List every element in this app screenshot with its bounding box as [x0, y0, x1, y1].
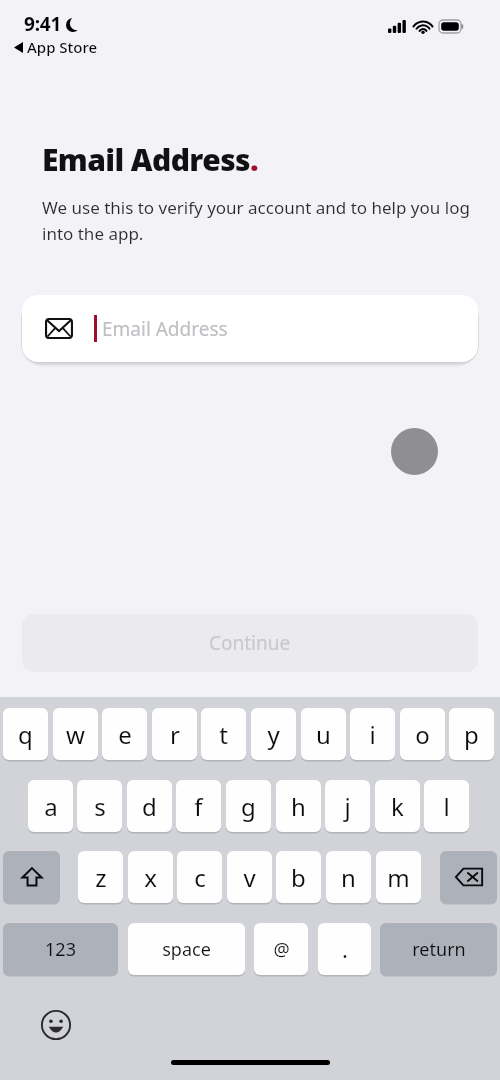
button[interactable]: n [326, 851, 371, 903]
button[interactable]: m [376, 851, 421, 903]
button[interactable]: return [380, 923, 497, 975]
staticText: . [342, 934, 348, 964]
button[interactable]: g [226, 780, 271, 832]
staticText: e [118, 718, 132, 751]
staticText: j [344, 790, 351, 823]
staticText: 9:41 [24, 11, 62, 37]
button[interactable]: w [53, 708, 98, 760]
staticText: r [170, 718, 180, 751]
button[interactable]: @ [254, 923, 308, 975]
staticText: k [391, 790, 404, 823]
staticText: s [94, 790, 106, 823]
staticText: t [219, 718, 228, 751]
button[interactable]: Shift [3, 851, 60, 903]
button[interactable]: space [128, 923, 245, 975]
staticText: n [341, 861, 356, 894]
button[interactable]: d [127, 780, 172, 832]
button[interactable]: a [28, 780, 73, 832]
button[interactable]: Emoji keyboard [36, 1005, 76, 1045]
staticText: y [267, 718, 280, 751]
staticText: i [369, 718, 376, 751]
staticText: Email Address [102, 316, 228, 342]
staticText: v [243, 861, 256, 894]
button[interactable]: c [177, 851, 222, 903]
staticText: Continue [209, 630, 291, 656]
staticText: 123 [45, 937, 76, 962]
button[interactable]: z [78, 851, 123, 903]
staticText: q [18, 718, 33, 751]
staticText: return [412, 937, 466, 962]
button[interactable]: b [276, 851, 321, 903]
button[interactable]: t [201, 708, 246, 760]
button[interactable]: e [102, 708, 147, 760]
button[interactable]: Continue [22, 614, 478, 672]
button[interactable]: 123 [3, 923, 118, 975]
button[interactable]: h [276, 780, 321, 832]
button[interactable]: Profile [391, 428, 438, 475]
button[interactable]: o [400, 708, 445, 760]
button[interactable]: r [152, 708, 197, 760]
staticText: g [241, 790, 256, 823]
staticText: space [162, 937, 211, 962]
button[interactable]: u [301, 708, 346, 760]
staticText: m [387, 861, 410, 894]
staticText: We use this to verify your account and t… [42, 196, 472, 245]
staticText: o [415, 718, 430, 751]
button[interactable]: f [176, 780, 221, 832]
button[interactable]: App Store [12, 36, 100, 58]
button[interactable]: j [325, 780, 370, 832]
staticText: a [44, 790, 58, 823]
button[interactable]: . [318, 923, 371, 975]
button[interactable]: Email Address [22, 295, 478, 362]
button[interactable]: i [350, 708, 395, 760]
staticText: b [291, 861, 306, 894]
staticText: App Store [27, 37, 98, 57]
button[interactable]: p [449, 708, 494, 760]
button[interactable]: k [375, 780, 420, 832]
button[interactable]: s [77, 780, 122, 832]
staticText: w [66, 718, 85, 751]
button[interactable]: v [227, 851, 272, 903]
staticText: x [144, 861, 157, 894]
staticText: f [194, 790, 203, 823]
button[interactable]: y [251, 708, 296, 760]
staticText: @ [273, 937, 290, 962]
staticText: l [443, 790, 450, 823]
staticText: h [291, 790, 306, 823]
button[interactable]: x [128, 851, 173, 903]
button[interactable]: q [3, 708, 48, 760]
staticText: u [316, 718, 331, 751]
staticText: c [194, 861, 206, 894]
staticText: p [464, 718, 479, 751]
button[interactable]: Backspace [440, 851, 497, 903]
staticText: d [142, 790, 157, 823]
staticText: Email Address. [42, 139, 259, 180]
staticText: z [95, 861, 107, 894]
button[interactable]: l [424, 780, 469, 832]
